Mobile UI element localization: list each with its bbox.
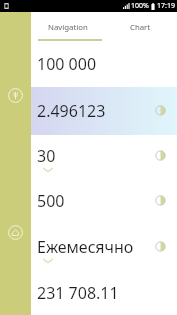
staticText: 30 <box>37 145 56 167</box>
button[interactable]: Home <box>8 225 23 240</box>
staticText: 231 708.11 <box>37 282 119 304</box>
button[interactable]: Options <box>155 195 166 206</box>
button[interactable]: Deposit <box>8 88 23 103</box>
staticText: Navigation <box>48 22 88 33</box>
button[interactable]: Chart <box>104 12 177 43</box>
button[interactable]: 500 <box>31 190 177 212</box>
staticText: Chart <box>130 22 151 33</box>
staticText: 100 000 <box>37 53 97 75</box>
button[interactable]: 231 708.11 <box>31 282 177 304</box>
staticText: 2.496123 <box>37 100 106 122</box>
button[interactable]: Ежемесячно <box>31 236 177 268</box>
button[interactable]: Options <box>155 241 166 252</box>
staticText: 500 <box>37 190 65 212</box>
button[interactable]: 30 <box>31 145 177 177</box>
button[interactable]: 100 000 <box>31 53 177 75</box>
staticText: Ежемесячно <box>37 236 134 258</box>
staticText: 17:19 <box>157 1 175 11</box>
button[interactable]: 2.496123 <box>31 100 177 122</box>
staticText: 100% <box>131 1 149 11</box>
button[interactable]: Options <box>155 150 166 161</box>
button[interactable]: Options <box>155 105 166 116</box>
button[interactable]: Navigation <box>31 12 104 43</box>
